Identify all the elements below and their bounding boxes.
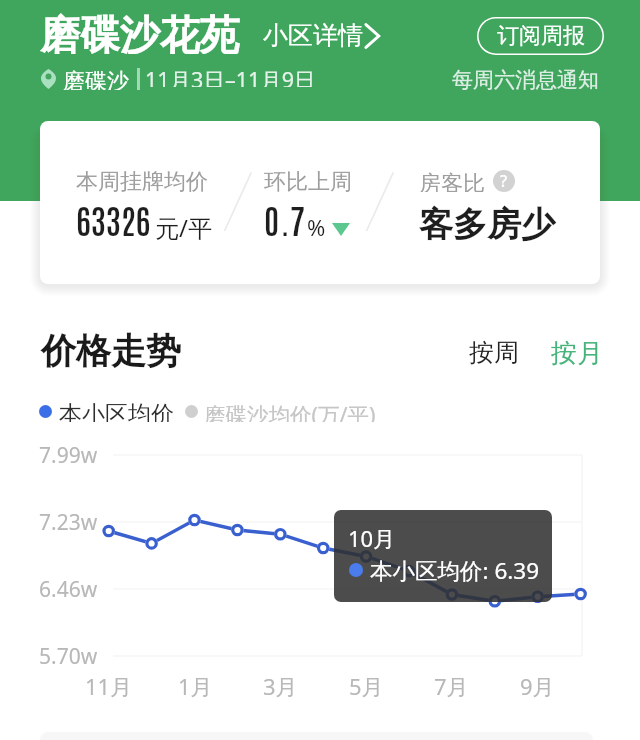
staticText: 每周六消息通知 [452, 67, 599, 93]
staticText: 63326 [76, 197, 151, 241]
staticText: % [307, 212, 326, 242]
staticText: 3月 [263, 671, 298, 701]
button[interactable]: 小区详情 [263, 17, 380, 48]
staticText: 本小区均价 [59, 400, 174, 422]
staticText: 1月 [178, 671, 213, 701]
button[interactable]: 按周 [469, 337, 519, 368]
staticText: 6.46w [39, 575, 98, 604]
staticText: 磨碟沙花苑 [40, 10, 240, 54]
staticText: 价格走势 [41, 329, 181, 373]
staticText: 本小区均价: 6.39 [370, 555, 540, 585]
staticText: 11月 [85, 671, 133, 701]
staticText: 本周挂牌均价 [76, 168, 208, 196]
button[interactable]: 按月 [551, 337, 603, 370]
staticText: 7月 [434, 671, 469, 701]
staticText: 按月 [551, 337, 603, 370]
button[interactable]: 房客比说明 [493, 170, 515, 192]
staticText: 磨碟沙 [63, 68, 129, 90]
staticText: 元/平 [155, 211, 212, 244]
staticText: 房客比 [419, 170, 485, 192]
staticText: 11月3日–11月9日 [145, 65, 316, 87]
staticText: 按周 [469, 337, 519, 368]
staticText: 9月 [520, 671, 555, 701]
staticText: 5.70w [39, 642, 98, 671]
staticText: 10月 [348, 523, 396, 553]
button[interactable]: 订阅周报 [477, 17, 604, 55]
staticText: 订阅周报 [497, 22, 585, 50]
staticText: ? [500, 170, 508, 192]
staticText: 7.23w [39, 508, 98, 537]
staticText: 客多房少 [419, 203, 555, 246]
staticText: 5月 [349, 671, 384, 701]
staticText: 环比上周 [264, 168, 352, 196]
staticText: 0.7 [264, 197, 307, 241]
staticText: 磨碟沙均价(万/平) [204, 400, 376, 422]
staticText: 7.99w [39, 441, 98, 470]
staticText: 小区详情 [263, 20, 363, 51]
